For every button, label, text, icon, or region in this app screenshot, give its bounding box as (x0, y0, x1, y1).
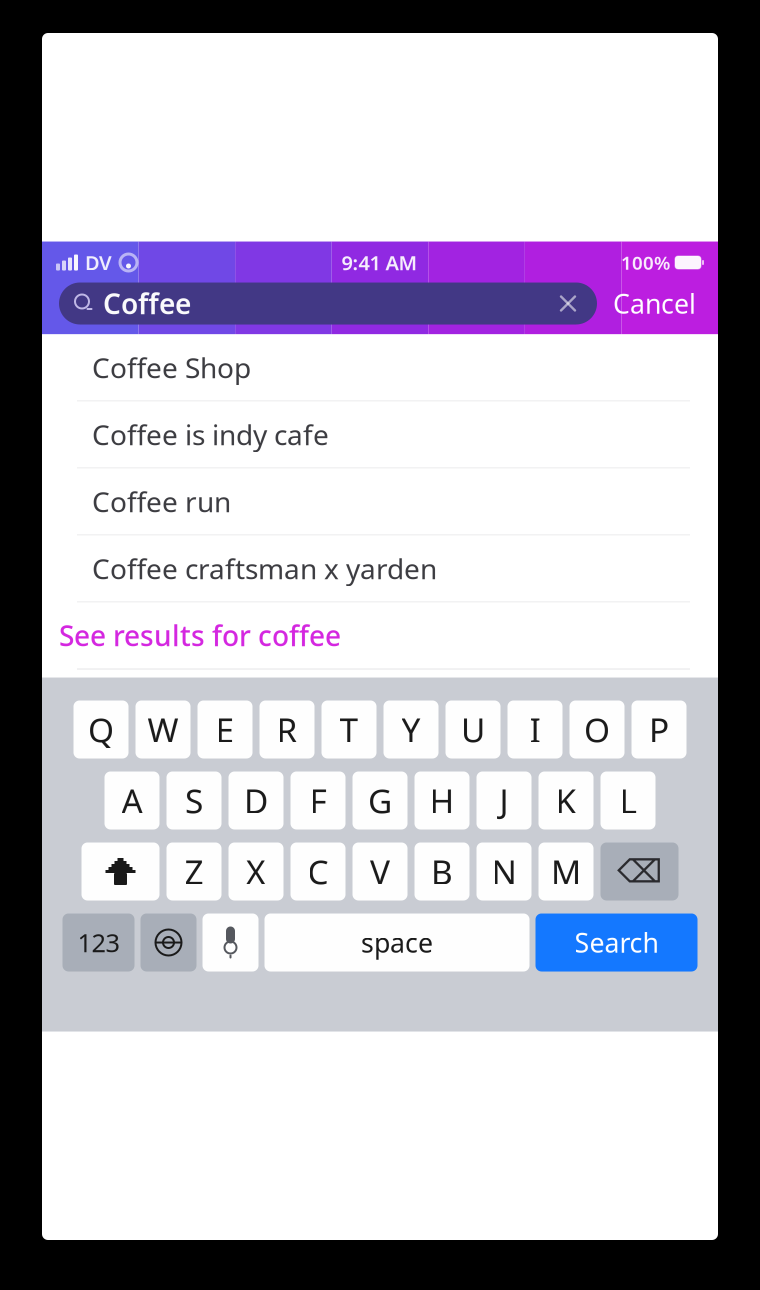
staticText: T (339, 707, 358, 752)
button[interactable]: N (476, 842, 531, 900)
staticText: G (368, 778, 392, 823)
staticText: F (309, 778, 326, 823)
button[interactable]: Z (166, 842, 221, 900)
button[interactable]: Coffee (59, 282, 597, 324)
button[interactable]: Cancel (603, 282, 706, 324)
button[interactable]: space (264, 913, 529, 971)
button[interactable]: B (414, 842, 469, 900)
button[interactable]: G (352, 771, 407, 829)
button[interactable]: Coffee craftsman x yarden (42, 535, 718, 602)
staticText: See results for coffee (59, 617, 341, 654)
button[interactable]: Delete (600, 842, 678, 900)
button[interactable]: W (135, 700, 190, 758)
button[interactable]: A (104, 771, 159, 829)
staticText: O (584, 707, 610, 752)
staticText: Coffee (103, 285, 191, 322)
staticText: ⌫ (617, 853, 662, 890)
staticText: 9:41 AM (341, 249, 417, 276)
staticText: C (307, 849, 328, 894)
button[interactable]: E (197, 700, 252, 758)
button[interactable]: P (631, 700, 686, 758)
staticText: X (246, 849, 266, 894)
button[interactable]: Dictate (202, 913, 258, 971)
staticText: Y (401, 707, 420, 752)
button[interactable]: F (290, 771, 345, 829)
staticText: 123 (77, 926, 119, 959)
staticText: H (429, 778, 454, 823)
staticText: A (121, 778, 142, 823)
button[interactable]: Coffee Shop (42, 334, 718, 401)
button[interactable]: U (445, 700, 500, 758)
button[interactable]: R (259, 700, 314, 758)
staticText: I (529, 707, 540, 752)
staticText: Z (184, 849, 203, 894)
staticText: S (185, 778, 203, 823)
button[interactable]: Search (535, 913, 697, 971)
button[interactable]: See results for coffee (42, 602, 718, 669)
staticText: Coffee run (92, 483, 231, 520)
staticText: N (491, 849, 516, 894)
staticText: L (619, 778, 636, 823)
button[interactable]: Coffee run (42, 468, 718, 535)
button[interactable]: J (476, 771, 531, 829)
staticText: Search (574, 925, 658, 960)
button[interactable]: Y (383, 700, 438, 758)
staticText: B (431, 849, 453, 894)
staticText: Cancel (613, 286, 696, 321)
button[interactable]: L (600, 771, 655, 829)
staticText: K (555, 778, 576, 823)
staticText: E (215, 707, 234, 752)
button[interactable]: Q (73, 700, 128, 758)
button[interactable]: H (414, 771, 469, 829)
staticText: space (361, 925, 433, 960)
button[interactable]: K (538, 771, 593, 829)
button[interactable]: O (569, 700, 624, 758)
button[interactable]: Shift (81, 842, 159, 900)
staticText: Coffee is indy cafe (92, 416, 329, 453)
staticText: M (551, 849, 581, 894)
button[interactable]: C (290, 842, 345, 900)
button[interactable]: D (228, 771, 283, 829)
staticText: P (649, 707, 669, 752)
button[interactable]: V (352, 842, 407, 900)
button[interactable]: M (538, 842, 593, 900)
staticText: DV (85, 249, 112, 276)
staticText: D (244, 778, 268, 823)
staticText: Coffee Shop (92, 349, 251, 386)
staticText: V (370, 849, 390, 894)
button[interactable]: T (321, 700, 376, 758)
staticText: R (276, 707, 297, 752)
staticText: Coffee craftsman x yarden (92, 550, 437, 587)
button[interactable]: Next keyboard (140, 913, 196, 971)
staticText: W (147, 707, 178, 752)
button[interactable]: X (228, 842, 283, 900)
staticText: J (499, 778, 508, 823)
button[interactable]: Coffee is indy cafe (42, 401, 718, 468)
button[interactable]: I (507, 700, 562, 758)
button[interactable]: S (166, 771, 221, 829)
staticText: 100% (621, 250, 670, 275)
staticText: Q (88, 707, 114, 752)
button[interactable]: 123 (62, 913, 134, 971)
staticText: U (461, 707, 485, 752)
